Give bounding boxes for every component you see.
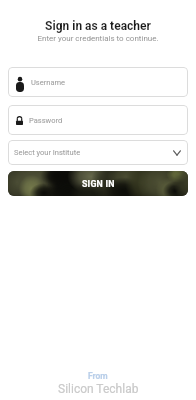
button[interactable]: Select your Institute (8, 140, 188, 165)
other: Open institute list (173, 150, 181, 156)
staticText: Enter your credentials to continue. (0, 34, 196, 43)
staticText: Username (31, 78, 66, 87)
button[interactable]: SIGN IN (8, 171, 188, 196)
staticText: Silicon Techlab (58, 382, 139, 396)
button[interactable]: Password (8, 105, 188, 135)
staticText: SIGN IN (82, 179, 115, 189)
other: Password (16, 116, 23, 125)
staticText: Select your Institute (14, 148, 81, 157)
button[interactable]: Username (8, 67, 188, 97)
staticText: Password (29, 116, 63, 125)
other: Username (16, 77, 24, 87)
staticText: From (88, 371, 108, 381)
staticText: Sign in as a teacher (0, 19, 196, 33)
